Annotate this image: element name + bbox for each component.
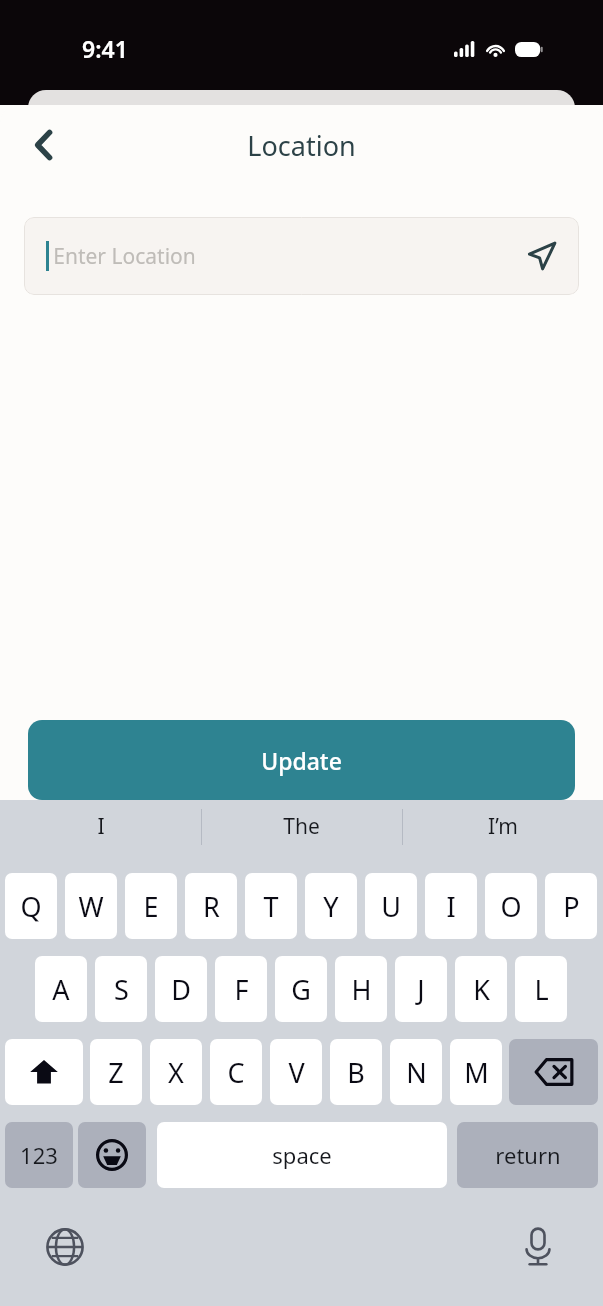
staticText: F bbox=[234, 971, 249, 1008]
staticText: space bbox=[272, 1140, 332, 1170]
staticText: S bbox=[114, 971, 129, 1008]
button[interactable]: M bbox=[450, 1039, 502, 1105]
button[interactable]: I bbox=[425, 873, 477, 939]
button[interactable]: Back bbox=[20, 121, 68, 169]
button[interactable]: Backspace bbox=[509, 1039, 598, 1105]
button[interactable]: Emoji bbox=[78, 1122, 146, 1188]
staticText: M bbox=[464, 1054, 489, 1091]
staticText: E bbox=[143, 888, 159, 925]
button[interactable]: Update bbox=[28, 720, 575, 800]
staticText: The bbox=[283, 812, 320, 841]
button[interactable]: W bbox=[65, 873, 117, 939]
button[interactable]: The bbox=[201, 800, 402, 853]
staticText: R bbox=[203, 888, 220, 925]
staticText: A bbox=[52, 971, 70, 1008]
staticText: J bbox=[417, 971, 425, 1008]
button[interactable]: O bbox=[485, 873, 537, 939]
staticText: I bbox=[97, 812, 105, 841]
button[interactable]: B bbox=[330, 1039, 382, 1105]
staticText: D bbox=[171, 971, 191, 1008]
button[interactable]: P bbox=[545, 873, 597, 939]
button[interactable]: A bbox=[35, 956, 87, 1022]
button[interactable]: Z bbox=[90, 1039, 142, 1105]
button[interactable]: V bbox=[270, 1039, 322, 1105]
staticText: B bbox=[347, 1054, 365, 1091]
button[interactable]: Dictation bbox=[511, 1220, 565, 1274]
button[interactable]: R bbox=[185, 873, 237, 939]
button[interactable]: Change keyboard bbox=[38, 1220, 92, 1274]
button[interactable]: G bbox=[275, 956, 327, 1022]
staticText: Enter Location bbox=[53, 242, 196, 271]
button[interactable]: I bbox=[0, 800, 201, 853]
staticText: Update bbox=[261, 745, 342, 776]
button[interactable]: C bbox=[210, 1039, 262, 1105]
button[interactable]: E bbox=[125, 873, 177, 939]
staticText: W bbox=[78, 888, 104, 925]
staticText: I’m bbox=[488, 812, 518, 841]
staticText: 9:41 bbox=[82, 33, 128, 64]
button[interactable]: Q bbox=[5, 873, 57, 939]
button[interactable]: T bbox=[245, 873, 297, 939]
staticText: H bbox=[351, 971, 372, 1008]
staticText: Q bbox=[20, 888, 42, 925]
staticText: X bbox=[168, 1054, 184, 1091]
button[interactable]: L bbox=[515, 956, 567, 1022]
button[interactable]: J bbox=[395, 956, 447, 1022]
staticText: L bbox=[534, 971, 549, 1008]
button[interactable]: X bbox=[150, 1039, 202, 1105]
button[interactable]: U bbox=[365, 873, 417, 939]
button[interactable]: S bbox=[95, 956, 147, 1022]
button[interactable]: D bbox=[155, 956, 207, 1022]
button[interactable]: return bbox=[457, 1122, 598, 1188]
button[interactable]: space bbox=[157, 1122, 447, 1188]
staticText: 123 bbox=[20, 1140, 58, 1170]
button[interactable]: Shift bbox=[5, 1039, 83, 1105]
staticText: T bbox=[263, 888, 279, 925]
button[interactable]: Y bbox=[305, 873, 357, 939]
button[interactable]: F bbox=[215, 956, 267, 1022]
staticText: return bbox=[495, 1140, 561, 1170]
staticText: Y bbox=[323, 888, 339, 925]
staticText: U bbox=[381, 888, 401, 925]
staticText: P bbox=[563, 888, 580, 925]
staticText: G bbox=[291, 971, 311, 1008]
staticText: I bbox=[446, 888, 456, 925]
staticText: C bbox=[227, 1054, 245, 1091]
staticText: Z bbox=[108, 1054, 124, 1091]
staticText: K bbox=[473, 971, 490, 1008]
button[interactable]: N bbox=[390, 1039, 442, 1105]
staticText: Location bbox=[247, 127, 356, 164]
button[interactable]: 123 bbox=[5, 1122, 73, 1188]
button[interactable]: I’m bbox=[402, 800, 603, 853]
button[interactable]: H bbox=[335, 956, 387, 1022]
button[interactable]: K bbox=[455, 956, 507, 1022]
staticText: N bbox=[406, 1054, 427, 1091]
staticText: O bbox=[500, 888, 522, 925]
button[interactable]: Enter Location bbox=[24, 217, 579, 295]
staticText: V bbox=[288, 1054, 305, 1091]
